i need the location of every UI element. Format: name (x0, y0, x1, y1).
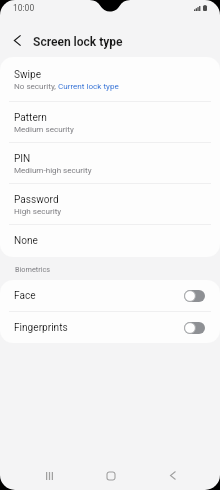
staticText: Medium security (14, 124, 74, 133)
staticText: None (14, 235, 38, 247)
button[interactable]: Home (79, 461, 140, 490)
button[interactable]: Back (140, 461, 201, 490)
button[interactable]: Navigate up (7, 22, 28, 57)
staticText: Screen lock type (33, 35, 123, 49)
button[interactable]: Fingerprints (0, 312, 220, 343)
button[interactable]: Swipe (0, 57, 220, 101)
staticText: High security (14, 206, 62, 215)
button[interactable]: Face (0, 280, 220, 311)
staticText: Pattern (14, 112, 47, 124)
staticText: Password (14, 194, 59, 206)
button[interactable]: None (0, 225, 220, 257)
staticText: Face (14, 290, 184, 302)
staticText: Fingerprints (14, 322, 184, 334)
button[interactable]: Password (0, 184, 220, 224)
button[interactable]: Pattern (0, 102, 220, 142)
staticText: Biometrics (15, 265, 50, 274)
staticText: 10:00 (13, 3, 35, 13)
staticText: No security, Current lock type (14, 81, 119, 90)
staticText: Medium-high security (14, 165, 92, 174)
staticText: PIN (14, 153, 31, 165)
staticText: Swipe (14, 69, 42, 81)
button[interactable]: Recent apps (19, 461, 79, 490)
button[interactable]: PIN (0, 143, 220, 183)
